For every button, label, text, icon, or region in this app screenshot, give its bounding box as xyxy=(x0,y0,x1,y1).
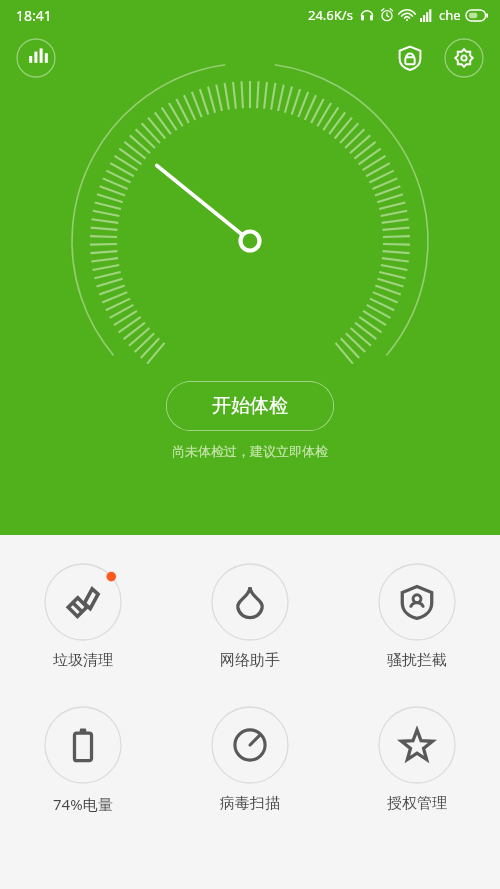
staticText: 18:41 xyxy=(16,6,52,25)
button[interactable]: 骚扰拦截 xyxy=(333,559,500,674)
staticText: 24.6K/s xyxy=(308,6,353,24)
staticText: che xyxy=(439,6,461,24)
button[interactable]: Statistics xyxy=(16,38,56,78)
button[interactable]: 74%电量 xyxy=(0,702,166,818)
button[interactable]: 授权管理 xyxy=(333,702,500,817)
staticText: 垃圾清理 xyxy=(53,651,113,670)
staticText: 网络助手 xyxy=(220,651,280,670)
staticText: 授权管理 xyxy=(387,794,447,813)
button[interactable]: Security xyxy=(390,38,430,78)
button[interactable]: 垃圾清理 xyxy=(0,559,166,674)
button[interactable]: 病毒扫描 xyxy=(166,702,333,817)
staticText: 骚扰拦截 xyxy=(387,651,447,670)
staticText: 开始体检 xyxy=(212,394,288,418)
button[interactable]: 开始体检 xyxy=(166,381,334,431)
staticText: 尚未体检过，建议立即体检 xyxy=(172,443,328,459)
button[interactable]: Settings xyxy=(444,38,484,78)
staticText: 74%电量 xyxy=(53,794,113,814)
button[interactable]: 网络助手 xyxy=(166,559,333,674)
staticText: 病毒扫描 xyxy=(220,794,280,813)
